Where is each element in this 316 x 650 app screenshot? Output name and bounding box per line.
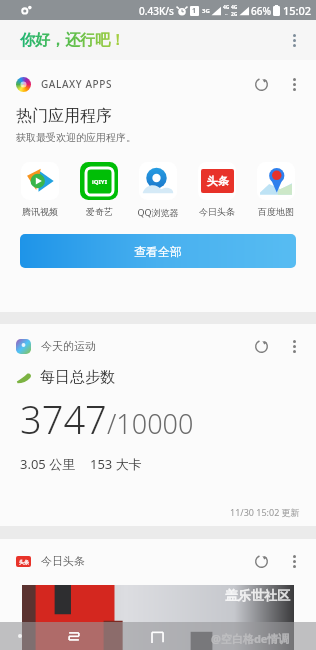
staticText: 153 大卡	[90, 455, 142, 473]
staticText: 查看全部	[134, 244, 182, 259]
button[interactable]: Refresh	[244, 68, 278, 100]
staticText: 获取最受欢迎的应用程序。	[16, 131, 136, 144]
button[interactable]: Home	[138, 622, 178, 650]
button[interactable]: 查看全部	[20, 234, 296, 268]
staticText: 头条	[207, 174, 229, 188]
button[interactable]: iQIYI	[71, 162, 127, 217]
staticText: 2G	[231, 11, 238, 18]
staticText: 4G	[231, 4, 238, 11]
staticText: 66%	[251, 4, 271, 18]
staticText: 11/30 15:02 更新	[230, 506, 300, 518]
staticText: 3.05 公里	[20, 455, 76, 473]
button[interactable]: Refresh	[244, 545, 278, 577]
button[interactable]: More options	[278, 330, 310, 362]
button[interactable]: More options	[278, 24, 310, 56]
staticText: 3G	[202, 7, 210, 15]
button[interactable]: More options	[278, 68, 310, 100]
button[interactable]: 百度地图	[248, 162, 304, 217]
staticText: 百度地图	[258, 206, 294, 217]
button[interactable]: Refresh	[244, 330, 278, 362]
staticText: QQ浏览器	[137, 206, 179, 218]
staticText: 1	[192, 6, 197, 16]
staticText: 今日头条	[199, 206, 235, 217]
button[interactable]: 盖乐世社区	[22, 585, 294, 650]
staticText: 今日头条	[41, 554, 85, 568]
staticText: 热门应用程序	[16, 106, 112, 126]
button[interactable]: 头条	[189, 162, 245, 217]
staticText: 腾讯视频	[22, 206, 58, 217]
staticText: 3747	[20, 393, 107, 445]
staticText: 今天的运动	[41, 339, 96, 353]
staticText: 0.43K/s	[139, 4, 174, 18]
button[interactable]: More options	[278, 545, 310, 577]
staticText: 你好，还行吧！	[20, 31, 125, 50]
button[interactable]: QQ浏览器	[130, 162, 186, 218]
staticText: 每日总步数	[40, 368, 115, 387]
button[interactable]: 腾讯视频	[12, 162, 68, 217]
staticText: @空白格de情调	[211, 631, 290, 646]
staticText: iQIYI	[92, 178, 107, 186]
staticText: 4G	[223, 4, 230, 11]
staticText: 盖乐世社区	[225, 587, 290, 603]
staticText: 头条	[19, 559, 29, 565]
staticText: GALAXY APPS	[41, 77, 113, 91]
staticText: 15:02	[283, 3, 312, 18]
staticText: /10000	[107, 405, 194, 442]
staticText: ··	[225, 11, 228, 18]
button[interactable]: Recents	[56, 622, 92, 650]
staticText: 爱奇艺	[86, 206, 113, 217]
